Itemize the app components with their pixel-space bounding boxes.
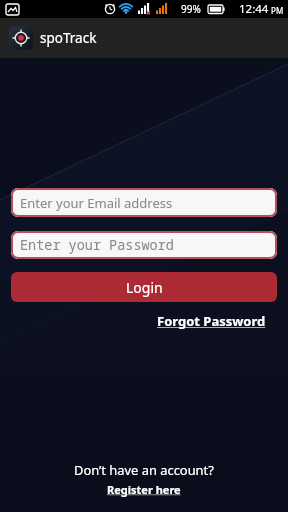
button[interactable]: Forgot Password (157, 312, 266, 330)
staticText: Don’t have an account? (74, 461, 214, 479)
button[interactable]: Enter your Email address (11, 188, 277, 217)
button[interactable]: Register here (107, 482, 181, 497)
staticText: Enter your Password (20, 236, 174, 254)
button[interactable]: Login (11, 272, 277, 302)
staticText: Enter your Email address (20, 194, 173, 212)
staticText: 12:44 (239, 1, 269, 17)
staticText: 99% (181, 2, 201, 16)
staticText: spoTrack (40, 29, 97, 47)
staticText: PM (269, 5, 284, 16)
staticText: Login (126, 278, 163, 297)
button[interactable]: Enter your Password (11, 231, 277, 259)
button[interactable]: spoTrack (0, 18, 288, 58)
